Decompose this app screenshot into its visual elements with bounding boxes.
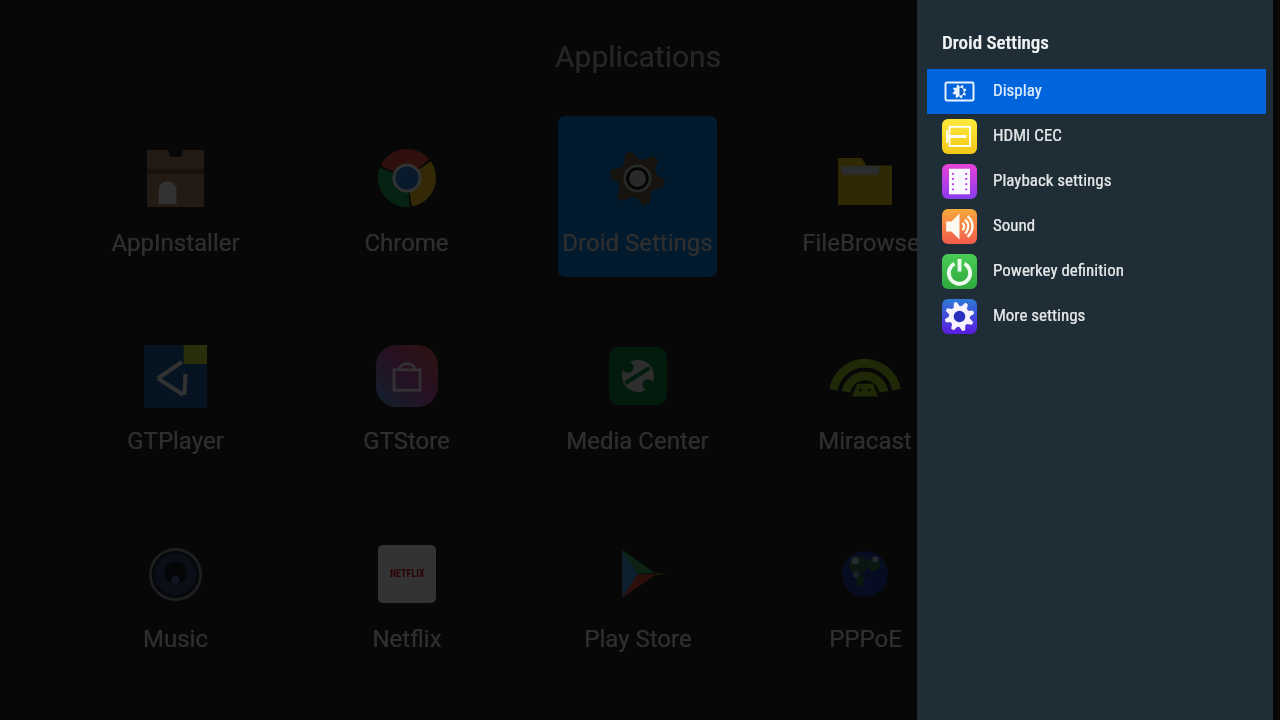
button[interactable]: Open PPPoE [753, 510, 977, 708]
staticText: GTStore [363, 427, 450, 455]
button[interactable]: Open FileBrowser [753, 114, 977, 312]
staticText: Droid Settings [562, 229, 713, 257]
staticText: Play Store [584, 625, 692, 653]
staticText: Powerkey definition [993, 260, 1124, 280]
button[interactable]: Open Chrome [291, 114, 522, 312]
button[interactable]: Powerkey definition [927, 249, 1266, 294]
staticText: NETFLIX [390, 568, 425, 580]
staticText: More settings [993, 305, 1086, 325]
button[interactable]: Open Netflix [291, 510, 522, 708]
button[interactable]: Open Droid Settings [522, 114, 753, 312]
button[interactable]: Open GTPlayer [60, 312, 291, 510]
staticText: PPPoE [829, 625, 902, 653]
button[interactable]: Open Music [60, 510, 291, 708]
staticText: Chrome [364, 229, 449, 257]
button[interactable]: Open Play Store [522, 510, 753, 708]
staticText: Miracast [818, 427, 912, 455]
staticText: FileBrowser [802, 229, 928, 257]
staticText: Netflix [372, 625, 442, 653]
staticText: AppInstaller [111, 229, 240, 257]
button[interactable]: Open Media Center [522, 312, 753, 510]
button[interactable]: More settings [927, 294, 1266, 339]
button[interactable]: Open AppInstaller [60, 114, 291, 312]
button[interactable]: Playback settings [927, 159, 1266, 204]
staticText: Droid Settings [942, 31, 1049, 53]
staticText: HDMI CEC [993, 125, 1062, 145]
staticText: Sound [993, 215, 1036, 235]
button[interactable]: Sound [927, 204, 1266, 249]
staticText: Display [993, 80, 1042, 100]
staticText: Music [143, 625, 208, 653]
staticText: Applications [555, 39, 722, 74]
staticText: Playback settings [993, 170, 1112, 190]
button[interactable]: Open GTStore [291, 312, 522, 510]
button[interactable]: HDMI CEC [927, 114, 1266, 159]
staticText: GTPlayer [127, 427, 224, 455]
staticText: Media Center [566, 427, 709, 455]
button[interactable]: Open Miracast [753, 312, 977, 510]
button[interactable]: Display [927, 69, 1266, 114]
